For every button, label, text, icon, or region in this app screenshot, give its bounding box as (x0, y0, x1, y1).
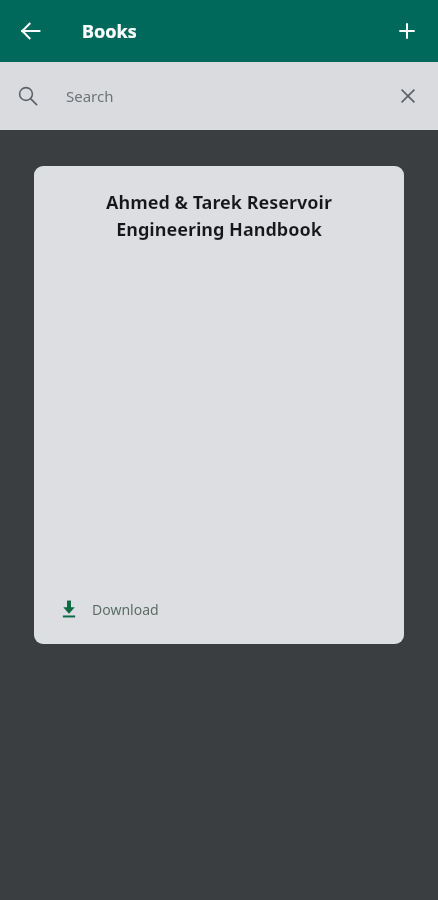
button[interactable]: Clear search (390, 78, 426, 114)
staticText: Download (92, 600, 159, 619)
button[interactable]: Download (58, 598, 159, 620)
other: Search (12, 80, 44, 112)
button[interactable]: Back (9, 9, 53, 53)
button[interactable]: Add (385, 9, 429, 53)
staticText: Books (82, 19, 137, 44)
staticText: Ahmed & Tarek Reservoir Engineering Hand… (44, 190, 394, 241)
button[interactable]: Search (0, 62, 438, 130)
staticText: Search (66, 86, 390, 106)
button[interactable]: Ahmed & Tarek Reservoir Engineering Hand… (34, 166, 404, 644)
